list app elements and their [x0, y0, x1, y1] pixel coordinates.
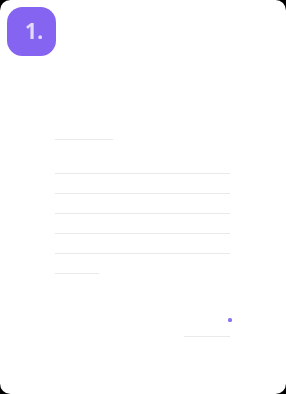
button[interactable]: 1.	[7, 7, 56, 56]
button[interactable]: Accent marker	[227, 317, 233, 323]
staticText: 1.	[25, 16, 44, 45]
